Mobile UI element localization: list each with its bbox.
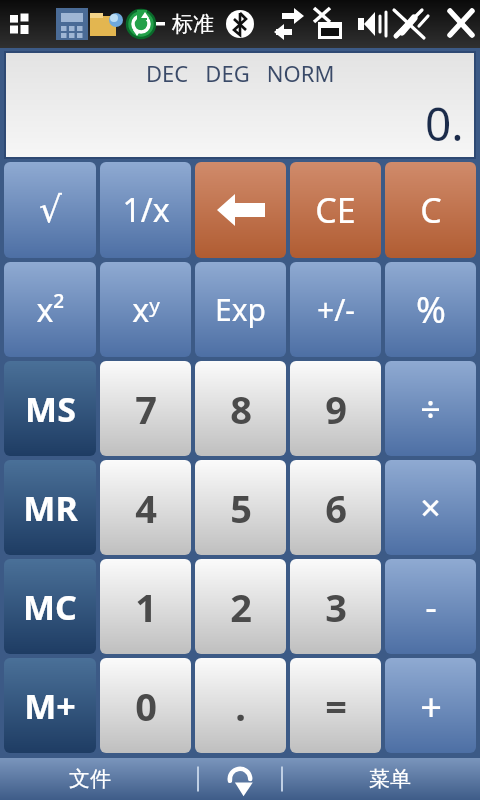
button[interactable]: 3	[290, 559, 381, 654]
staticText: MS	[25, 386, 76, 432]
button[interactable]: √	[4, 162, 96, 258]
staticText: +/-	[317, 289, 355, 330]
staticText: 3	[325, 581, 347, 633]
button[interactable]: Exp	[195, 262, 286, 357]
button[interactable]: 9	[290, 361, 381, 456]
staticText: xʸ	[132, 288, 160, 332]
staticText: -	[425, 582, 437, 631]
staticText: C	[420, 187, 442, 233]
button[interactable]: 7	[100, 361, 191, 456]
staticText: M+	[24, 683, 76, 729]
staticText: CE	[315, 187, 356, 233]
button[interactable]: MC	[4, 559, 96, 654]
staticText: +	[420, 680, 442, 732]
button[interactable]: 菜单	[300, 758, 480, 800]
staticText: Exp	[215, 289, 266, 330]
staticText: DEC DEG NORM	[146, 58, 335, 88]
staticText: 菜单	[369, 766, 411, 792]
button[interactable]: =	[290, 658, 381, 753]
staticText: %	[416, 285, 446, 334]
button[interactable]: Input panel	[195, 758, 285, 800]
staticText: 1/x	[122, 188, 170, 232]
button[interactable]: .	[195, 658, 286, 753]
button[interactable]: 8	[195, 361, 286, 456]
staticText: 1	[135, 581, 157, 633]
button[interactable]: 1/x	[100, 162, 191, 258]
staticText: 7	[135, 383, 157, 435]
button[interactable]: ×	[385, 460, 476, 555]
staticText: MR	[23, 485, 78, 531]
button[interactable]: -	[385, 559, 476, 654]
staticText: ÷	[420, 384, 441, 433]
button[interactable]: M+	[4, 658, 96, 753]
staticText: 6	[325, 482, 347, 534]
staticText: MC	[23, 584, 77, 630]
button[interactable]: MR	[4, 460, 96, 555]
staticText: 5	[230, 482, 252, 534]
button[interactable]: %	[385, 262, 476, 357]
staticText: 4	[135, 482, 157, 534]
staticText: 0.	[425, 92, 464, 155]
button[interactable]: 6	[290, 460, 381, 555]
staticText: 0	[135, 680, 157, 732]
button[interactable]: +	[385, 658, 476, 753]
staticText: 8	[230, 383, 252, 435]
button[interactable]: xʸ	[100, 262, 191, 357]
staticText: √	[39, 189, 62, 231]
button[interactable]: MS	[4, 361, 96, 456]
button[interactable]: 4	[100, 460, 191, 555]
button[interactable]: 文件	[0, 758, 180, 800]
button[interactable]: Backspace	[195, 162, 286, 258]
button[interactable]: 0	[100, 658, 191, 753]
button[interactable]: 1	[100, 559, 191, 654]
button[interactable]: ÷	[385, 361, 476, 456]
staticText: =	[325, 680, 347, 732]
staticText: x²	[36, 288, 65, 332]
button[interactable]: 5	[195, 460, 286, 555]
staticText: 9	[325, 383, 347, 435]
button[interactable]: +/-	[290, 262, 381, 357]
button[interactable]: C	[385, 162, 476, 258]
staticText: ×	[420, 483, 441, 532]
staticText: 标准	[172, 11, 214, 37]
button[interactable]: 2	[195, 559, 286, 654]
button[interactable]: x²	[4, 262, 96, 357]
staticText: 2	[230, 581, 252, 633]
button[interactable]: CE	[290, 162, 381, 258]
staticText: .	[235, 680, 246, 732]
staticText: 文件	[69, 766, 111, 792]
